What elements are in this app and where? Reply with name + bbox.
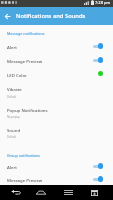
staticText: Group notifications xyxy=(7,153,41,158)
button[interactable]: Alert xyxy=(0,160,113,173)
button[interactable]: Popup Notifications xyxy=(0,103,113,116)
staticText: No popup xyxy=(7,115,20,119)
staticText: Notifications and Sounds xyxy=(16,12,86,20)
staticText: Popup Notifications xyxy=(7,107,48,113)
staticText: LED Color xyxy=(7,72,27,78)
button[interactable]: Back xyxy=(0,7,16,25)
staticText: Message Preview xyxy=(7,58,43,64)
button[interactable]: Message Preview xyxy=(0,54,113,67)
staticText: Vibrate xyxy=(7,86,22,92)
button[interactable]: Sound xyxy=(0,123,113,136)
staticText: 7:28 pm xyxy=(95,0,111,5)
button[interactable]: LED Color xyxy=(0,68,113,81)
button[interactable]: Home xyxy=(30,185,52,200)
staticText: Default xyxy=(7,95,17,99)
staticText: Alert xyxy=(7,44,17,50)
button[interactable]: Recent apps xyxy=(57,185,79,200)
button[interactable]: Back xyxy=(5,185,27,200)
staticText: Alert xyxy=(7,164,17,170)
button[interactable]: Vibrate xyxy=(0,82,113,95)
staticText: Message Preview xyxy=(7,177,43,183)
button[interactable]: Message Preview xyxy=(0,173,113,186)
button[interactable]: Alert xyxy=(0,40,113,53)
button[interactable]: Screenshot xyxy=(83,185,105,200)
staticText: Sound xyxy=(7,127,21,133)
staticText: Default xyxy=(7,135,17,139)
staticText: Message notifications xyxy=(7,31,45,36)
